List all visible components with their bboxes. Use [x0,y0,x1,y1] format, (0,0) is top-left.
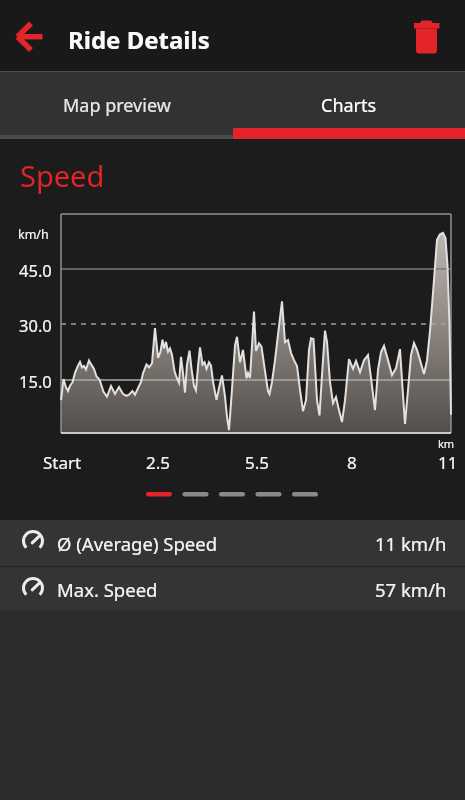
button[interactable]: Map preview [0,72,233,139]
staticText: 8 [347,451,357,473]
button[interactable]: Charts [233,72,465,139]
staticText: Start [43,451,82,473]
staticText: Map preview [63,93,171,118]
staticText: 2.5 [146,451,171,473]
staticText: 11 km/h [375,531,447,555]
staticText: km [438,436,455,448]
staticText: 11 [438,451,458,473]
staticText: 57 km/h [375,577,447,601]
staticText: km/h [18,226,49,243]
staticText: 30.0 [19,314,52,334]
staticText: Ø (Average) Speed [57,531,218,555]
staticText: 15.0 [19,370,52,390]
staticText: Ride Details [68,23,210,56]
staticText: 45.0 [19,259,52,279]
staticText: Speed [20,156,105,195]
button[interactable] [403,12,451,60]
staticText: Max. Speed [57,577,158,601]
button[interactable] [6,12,54,60]
staticText: Charts [321,93,377,118]
button[interactable] [0,567,465,611]
staticText: 5.5 [245,451,270,473]
button[interactable] [0,520,465,566]
